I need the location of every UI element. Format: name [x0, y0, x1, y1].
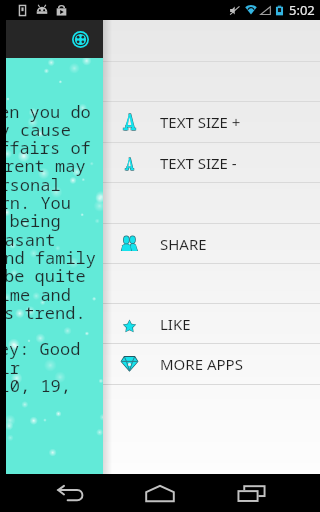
- staticText: It is a good time when you do: [6, 100, 91, 123]
- staticText: MORE APPS: [160, 354, 243, 374]
- button[interactable]: Recent apps: [226, 474, 276, 512]
- staticText: SHARE: [160, 234, 207, 254]
- staticText: toward your friends and family: [6, 246, 96, 269]
- staticText: the things that may cause: [6, 118, 71, 141]
- button[interactable]: LIKE: [103, 303, 320, 344]
- button[interactable]: TEXT SIZE -: [103, 142, 320, 183]
- staticText: Today's lucky journey: Good: [6, 337, 81, 360]
- staticText: LIKE: [160, 314, 191, 334]
- button[interactable]: Back: [46, 474, 96, 512]
- staticText: TEXT SIZE +: [160, 112, 241, 132]
- button[interactable]: SHARE: [103, 223, 320, 264]
- staticText: 5:02: [289, 1, 315, 19]
- staticText: intense for some time and: [6, 283, 71, 306]
- staticText: your home. A dear parent may: [6, 154, 86, 177]
- staticText: TEXT SIZE -: [160, 153, 237, 173]
- staticText: members. This could be quite: [6, 264, 86, 287]
- staticText: need your very personal: [6, 173, 61, 196]
- staticText: may find yourself being: [6, 209, 61, 232]
- staticText: Lucky numbers: 3, 10, 19,: [6, 374, 71, 397]
- staticText: attention or concern. You: [6, 191, 71, 214]
- staticText: you should enjoy this trend.: [6, 301, 86, 324]
- button[interactable]: App home: [71, 30, 90, 49]
- button[interactable]: Home: [135, 474, 185, 512]
- staticText: more open and pleasant: [6, 228, 56, 251]
- staticText: Your love: Fair: [6, 356, 20, 379]
- staticText: you trouble in the affairs of: [6, 136, 91, 159]
- button[interactable]: TEXT SIZE +: [103, 101, 320, 142]
- button[interactable]: MORE APPS: [103, 343, 320, 384]
